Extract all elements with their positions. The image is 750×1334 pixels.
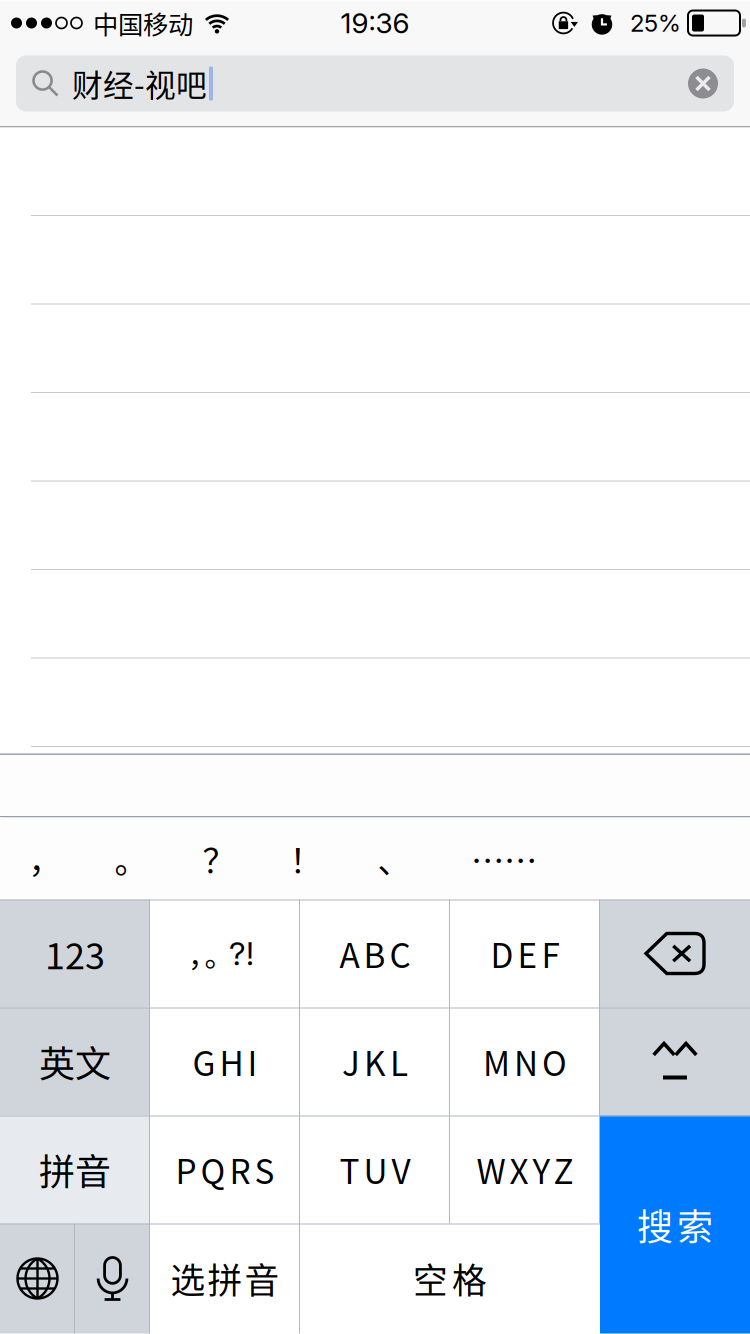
staticText: MNO: [483, 1037, 567, 1086]
button[interactable]: 搜索: [600, 1115, 750, 1333]
button[interactable]: 。: [87, 817, 175, 899]
staticText: 财经-视吧: [72, 61, 207, 106]
button[interactable]: TUV: [300, 1115, 450, 1223]
button[interactable]: Dictation: [75, 1223, 150, 1333]
button[interactable]: MNO: [450, 1007, 600, 1115]
staticText: 搜索: [637, 1198, 713, 1250]
staticText: WXYZ: [476, 1145, 573, 1194]
staticText: ABC: [339, 929, 410, 978]
staticText: 空格: [413, 1253, 487, 1304]
button[interactable]: Switch keyboard: [0, 1223, 75, 1333]
staticText: GHI: [192, 1037, 257, 1086]
staticText: ，: [188, 932, 217, 975]
button[interactable]: DEF: [450, 899, 600, 1007]
staticText: 选拼音: [170, 1253, 279, 1304]
button[interactable]: ABC: [300, 899, 450, 1007]
staticText: 19:36: [340, 6, 409, 40]
staticText: 、: [377, 834, 410, 883]
staticText: 123: [45, 927, 105, 979]
button[interactable]: ，: [3, 817, 87, 899]
button[interactable]: 、: [349, 817, 439, 899]
staticText: ，: [28, 834, 61, 883]
staticText: 中国移动: [93, 5, 193, 41]
staticText: DEF: [490, 929, 559, 978]
button[interactable]: Delete: [600, 899, 750, 1007]
button[interactable]: 财经-视吧: [16, 55, 734, 111]
button[interactable]: ……: [439, 817, 569, 899]
button[interactable]: 拼音: [0, 1115, 150, 1223]
staticText: 25%: [630, 8, 681, 37]
staticText: ?!: [229, 934, 254, 973]
staticText: 。: [114, 834, 147, 883]
button[interactable]: GHI: [150, 1007, 300, 1115]
button[interactable]: 123: [0, 899, 150, 1007]
button[interactable]: ？: [175, 817, 263, 899]
staticText: ……: [471, 834, 537, 883]
staticText: 。: [204, 932, 233, 975]
button[interactable]: WXYZ: [450, 1115, 600, 1223]
button[interactable]: 空格: [300, 1223, 600, 1333]
staticText: PQRS: [175, 1145, 274, 1194]
button[interactable]: Emoji: [600, 1007, 750, 1115]
button[interactable]: JKL: [300, 1007, 450, 1115]
button[interactable]: ！: [263, 817, 349, 899]
button[interactable]: ，: [150, 899, 300, 1007]
staticText: ？: [202, 834, 235, 883]
staticText: JKL: [342, 1037, 408, 1086]
staticText: TUV: [339, 1145, 410, 1194]
staticText: ！: [289, 834, 322, 883]
staticText: 拼音: [39, 1143, 111, 1195]
button[interactable]: 英文: [0, 1007, 150, 1115]
staticText: 英文: [39, 1035, 111, 1087]
button[interactable]: PQRS: [150, 1115, 300, 1223]
button[interactable]: 选拼音: [150, 1223, 300, 1333]
